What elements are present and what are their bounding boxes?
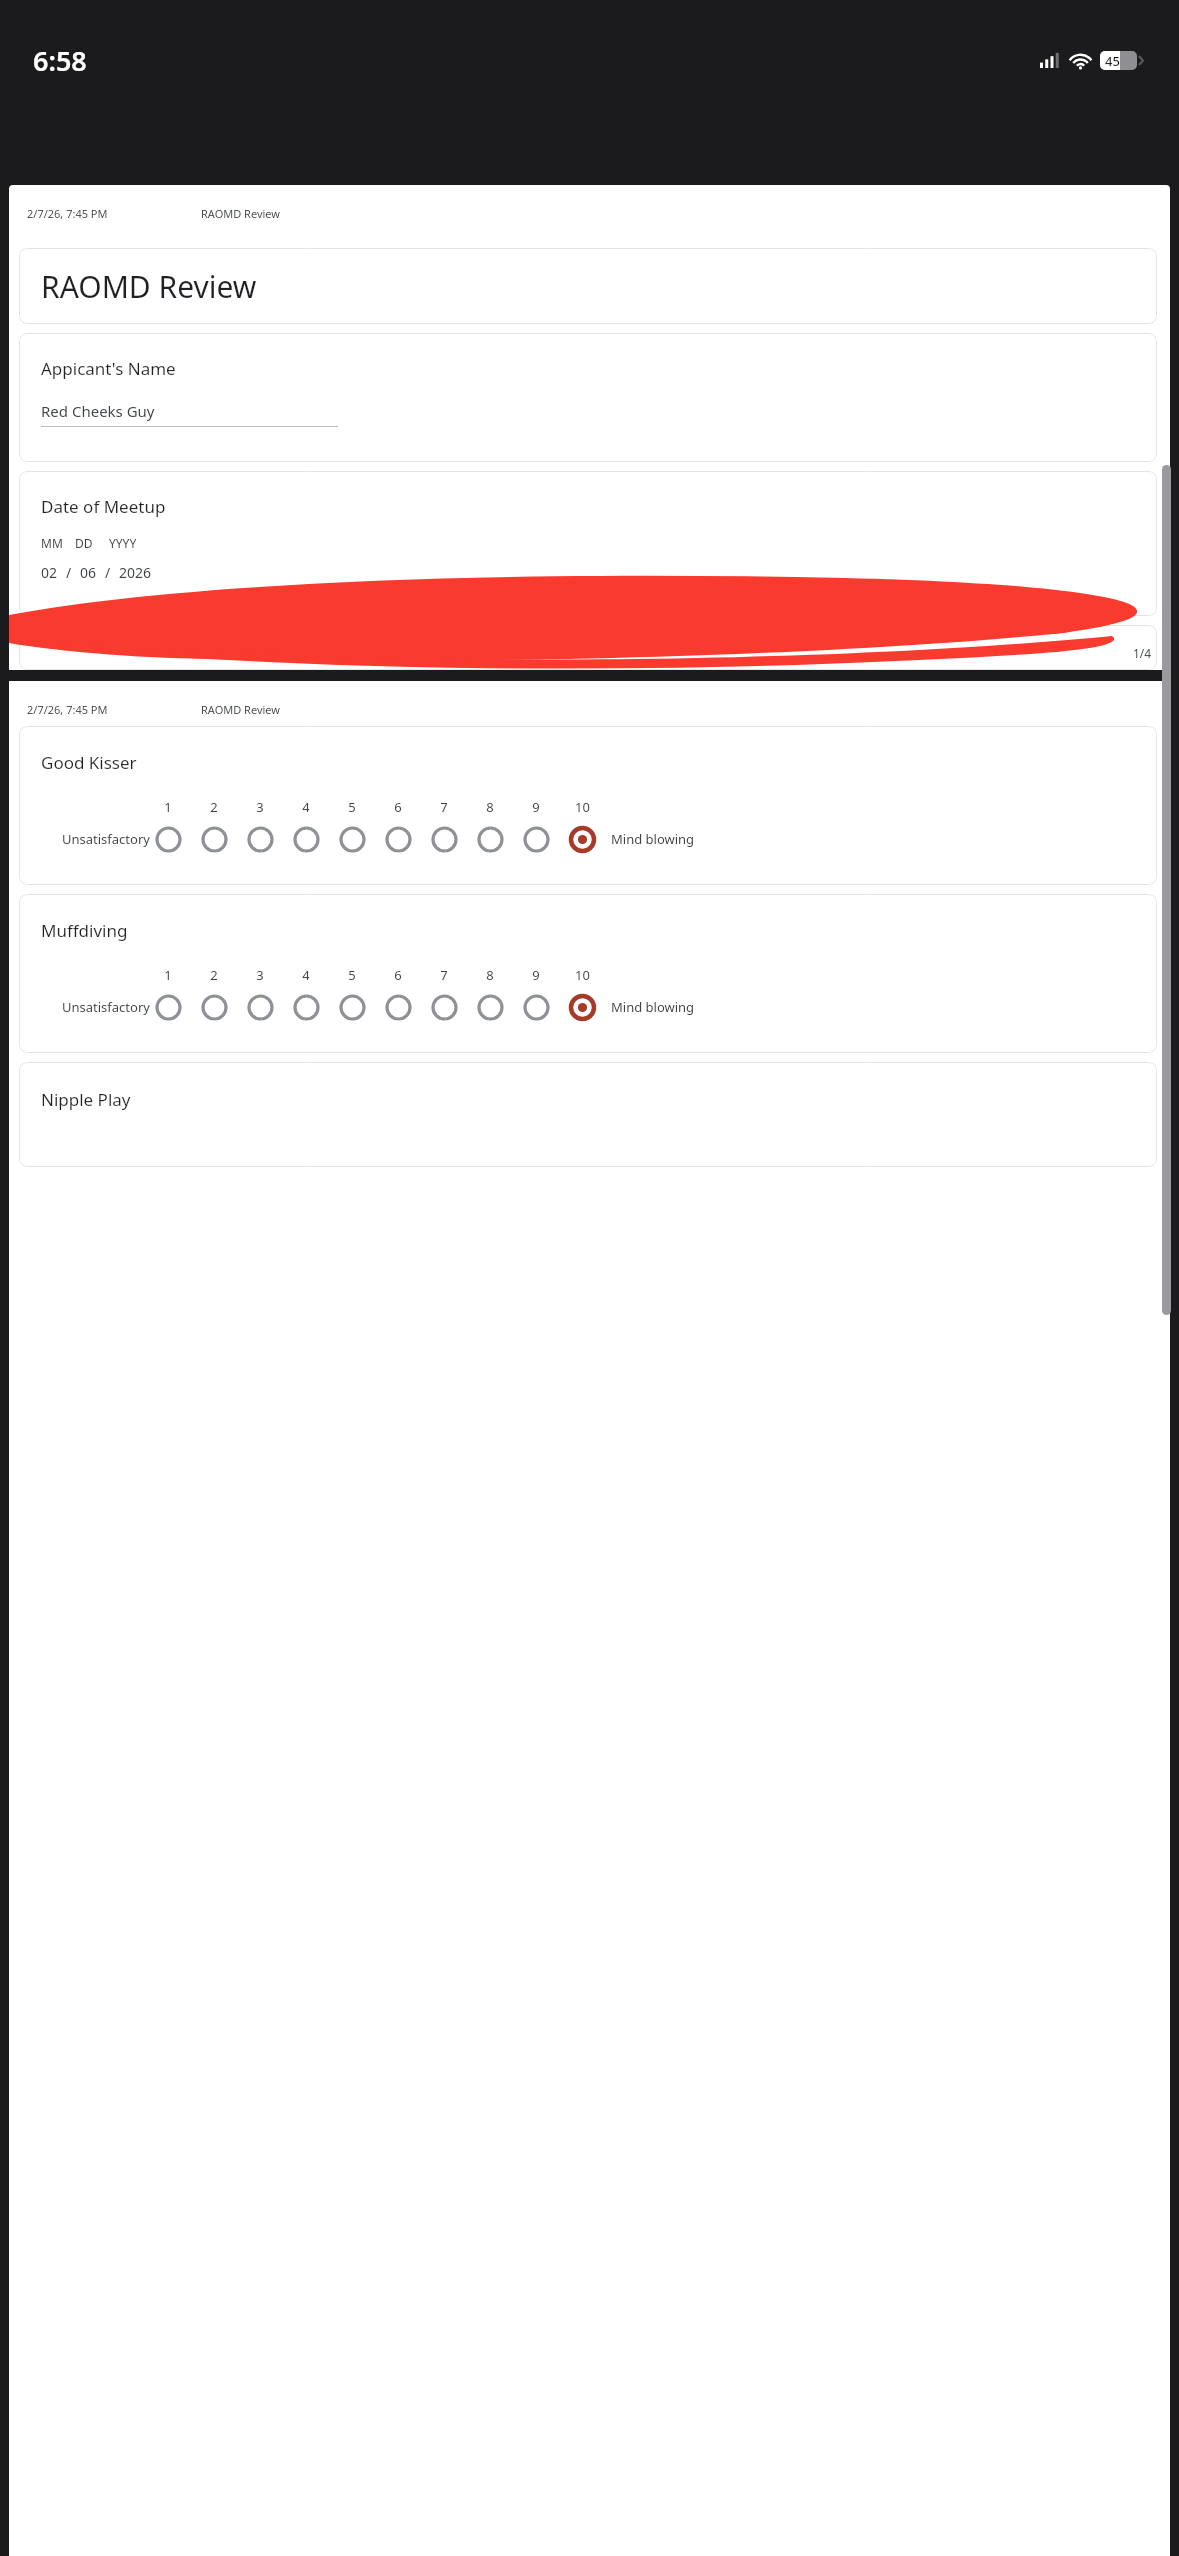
staticText: 2026 (119, 563, 152, 582)
staticText: 4 (302, 966, 310, 984)
staticText: / (105, 563, 111, 582)
staticText: 8 (486, 798, 494, 816)
button[interactable]: Date of Meetup (19, 471, 1157, 616)
button[interactable]: RAOMD Review (19, 248, 1157, 324)
staticText: 9 (532, 798, 540, 816)
staticText: YYYY (109, 535, 137, 551)
staticText: 2 (210, 966, 218, 984)
button[interactable]: Rating option (289, 990, 323, 1024)
button[interactable]: Rating option (427, 990, 461, 1024)
staticText: 1 (164, 966, 172, 984)
staticText: Muffdiving (41, 919, 128, 942)
staticText: 02 (41, 563, 58, 582)
staticText: 6 (394, 966, 402, 984)
button[interactable]: Rating option (473, 822, 507, 856)
staticText: 5 (348, 798, 356, 816)
button[interactable]: Rating option (381, 822, 415, 856)
staticText: Appicant's Name (41, 357, 176, 380)
staticText: RAOMD Review (201, 206, 280, 221)
button[interactable]: Rating option (151, 822, 185, 856)
button[interactable]: Rating option (335, 990, 369, 1024)
staticText: DD (75, 535, 93, 551)
staticText: Nipple Play (41, 1088, 131, 1111)
staticText: Good Kisser (41, 751, 137, 774)
button[interactable]: Muffdiving (19, 894, 1157, 1053)
button[interactable]: Rating option (473, 990, 507, 1024)
staticText: Mind blowing (611, 830, 695, 848)
staticText: 7 (440, 966, 448, 984)
staticText: 6:58 (33, 42, 87, 79)
staticText: 10 (575, 966, 590, 984)
button[interactable]: Rating option (519, 990, 553, 1024)
button[interactable]: Rating option (151, 990, 185, 1024)
staticText: Red Cheeks Guy (41, 401, 155, 421)
button[interactable]: Appicant's Name (19, 333, 1157, 462)
button[interactable]: Rating 10 selected (565, 822, 599, 856)
staticText: MM (41, 535, 63, 551)
button[interactable]: Nipple Play (19, 1062, 1157, 1167)
staticText: / (66, 563, 72, 582)
staticText: RAOMD Review (41, 266, 257, 307)
button[interactable]: Rating option (427, 822, 461, 856)
staticText: 5 (348, 966, 356, 984)
staticText: 6 (394, 798, 402, 816)
staticText: Mind blowing (611, 998, 695, 1016)
button[interactable]: Rating option (197, 990, 231, 1024)
button[interactable]: Rating option (289, 822, 323, 856)
staticText: 06 (80, 563, 97, 582)
staticText: 2 (210, 798, 218, 816)
staticText: Unsatisfactory (62, 998, 150, 1016)
staticText: Unsatisfactory (62, 830, 150, 848)
staticText: Date of Meetup (41, 495, 166, 518)
button[interactable]: Rating option (243, 822, 277, 856)
staticText: 3 (256, 798, 264, 816)
button[interactable]: Rating option (519, 822, 553, 856)
button[interactable]: Rating option (197, 822, 231, 856)
button[interactable]: Rating option (381, 990, 415, 1024)
staticText: 9 (532, 966, 540, 984)
staticText: 1 (164, 798, 172, 816)
button[interactable]: A Gentleman (19, 625, 1157, 670)
staticText: 8 (486, 966, 494, 984)
staticText: 1/4 (1133, 645, 1152, 661)
button[interactable]: Good Kisser (19, 726, 1157, 885)
staticText: 4 (302, 798, 310, 816)
staticText: 10 (575, 798, 590, 816)
staticText: 45 (1105, 52, 1120, 70)
staticText: 7 (440, 798, 448, 816)
staticText: RAOMD Review (201, 702, 280, 717)
button[interactable]: Rating option (335, 822, 369, 856)
staticText: 2/7/26, 7:45 PM (27, 206, 108, 221)
staticText: 2/7/26, 7:45 PM (27, 702, 108, 717)
staticText: 3 (256, 966, 264, 984)
button[interactable]: Rating option (243, 990, 277, 1024)
button[interactable]: Rating 10 selected (565, 990, 599, 1024)
